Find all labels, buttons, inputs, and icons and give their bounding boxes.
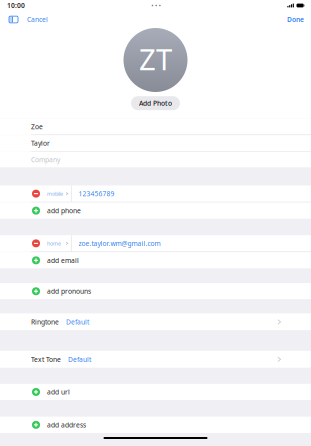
staticText: zoe.taylor.wm@gmail.com: [78, 239, 160, 248]
button[interactable]: add pronouns: [0, 283, 311, 299]
staticText: add email: [47, 256, 79, 265]
staticText: Company: [31, 155, 60, 164]
staticText: Default: [68, 355, 91, 364]
staticText: home: [47, 240, 61, 247]
staticText: Zoe: [31, 122, 43, 131]
staticText: add url: [47, 387, 70, 396]
button[interactable]: Done: [284, 11, 307, 28]
button[interactable]: add address: [0, 417, 311, 433]
staticText: Ringtone: [31, 317, 59, 326]
button[interactable]: Add Photo: [131, 96, 180, 110]
staticText: Add Photo: [139, 99, 172, 108]
button[interactable]: Text Tone: [0, 351, 311, 368]
staticText: 10:00: [7, 1, 25, 10]
staticText: ZT: [139, 39, 172, 78]
button[interactable]: mobile: [0, 185, 311, 202]
button[interactable]: home: [0, 235, 311, 251]
button[interactable]: Show Sidebar: [7, 11, 20, 28]
staticText: 123456789: [78, 189, 114, 198]
staticText: add pronouns: [47, 287, 91, 296]
button[interactable]: Cancel: [23, 11, 52, 28]
staticText: add phone: [47, 206, 81, 215]
button[interactable]: add url: [0, 384, 311, 400]
button[interactable]: add phone: [0, 202, 311, 219]
staticText: Text Tone: [31, 355, 61, 364]
button[interactable]: add email: [0, 252, 311, 268]
staticText: add address: [47, 420, 86, 429]
button[interactable]: Ringtone: [0, 313, 311, 330]
staticText: Done: [287, 15, 304, 24]
staticText: mobile: [47, 190, 63, 197]
staticText: Default: [66, 317, 89, 326]
staticText: Cancel: [27, 15, 48, 24]
staticText: Taylor: [31, 139, 50, 148]
